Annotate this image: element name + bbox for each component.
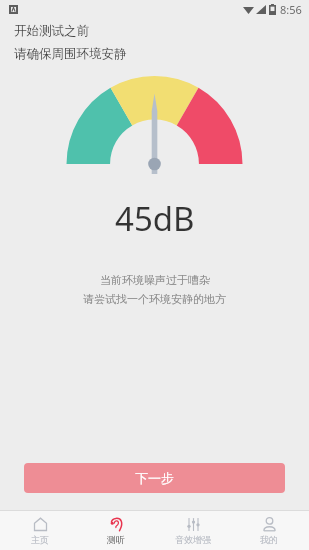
staticText: 音效增强 <box>175 534 211 545</box>
staticText: 测听 <box>107 534 125 545</box>
button[interactable]: 主页 <box>4 514 76 548</box>
staticText: 当前环境噪声过于嘈杂 <box>100 273 210 287</box>
staticText: 下一步 <box>135 470 174 486</box>
staticText: 8:56 <box>280 2 302 17</box>
button[interactable]: 测听 <box>80 514 152 548</box>
button[interactable]: 我的 <box>233 514 305 548</box>
staticText: 请尝试找一个环境安静的地方 <box>83 292 226 306</box>
staticText: 请确保周围环境安静 <box>14 46 127 62</box>
staticText: 45dB <box>115 196 195 241</box>
other: 我的 <box>262 517 277 532</box>
button[interactable]: 下一步 <box>24 463 285 493</box>
other: 测听 <box>109 517 124 532</box>
staticText: 开始测试之前 <box>14 23 89 39</box>
button[interactable]: 音效增强 <box>157 514 229 548</box>
staticText: 我的 <box>260 534 278 545</box>
staticText: 主页 <box>31 534 49 545</box>
other: 音效增强 <box>186 517 201 532</box>
other: 主页 <box>33 517 48 532</box>
